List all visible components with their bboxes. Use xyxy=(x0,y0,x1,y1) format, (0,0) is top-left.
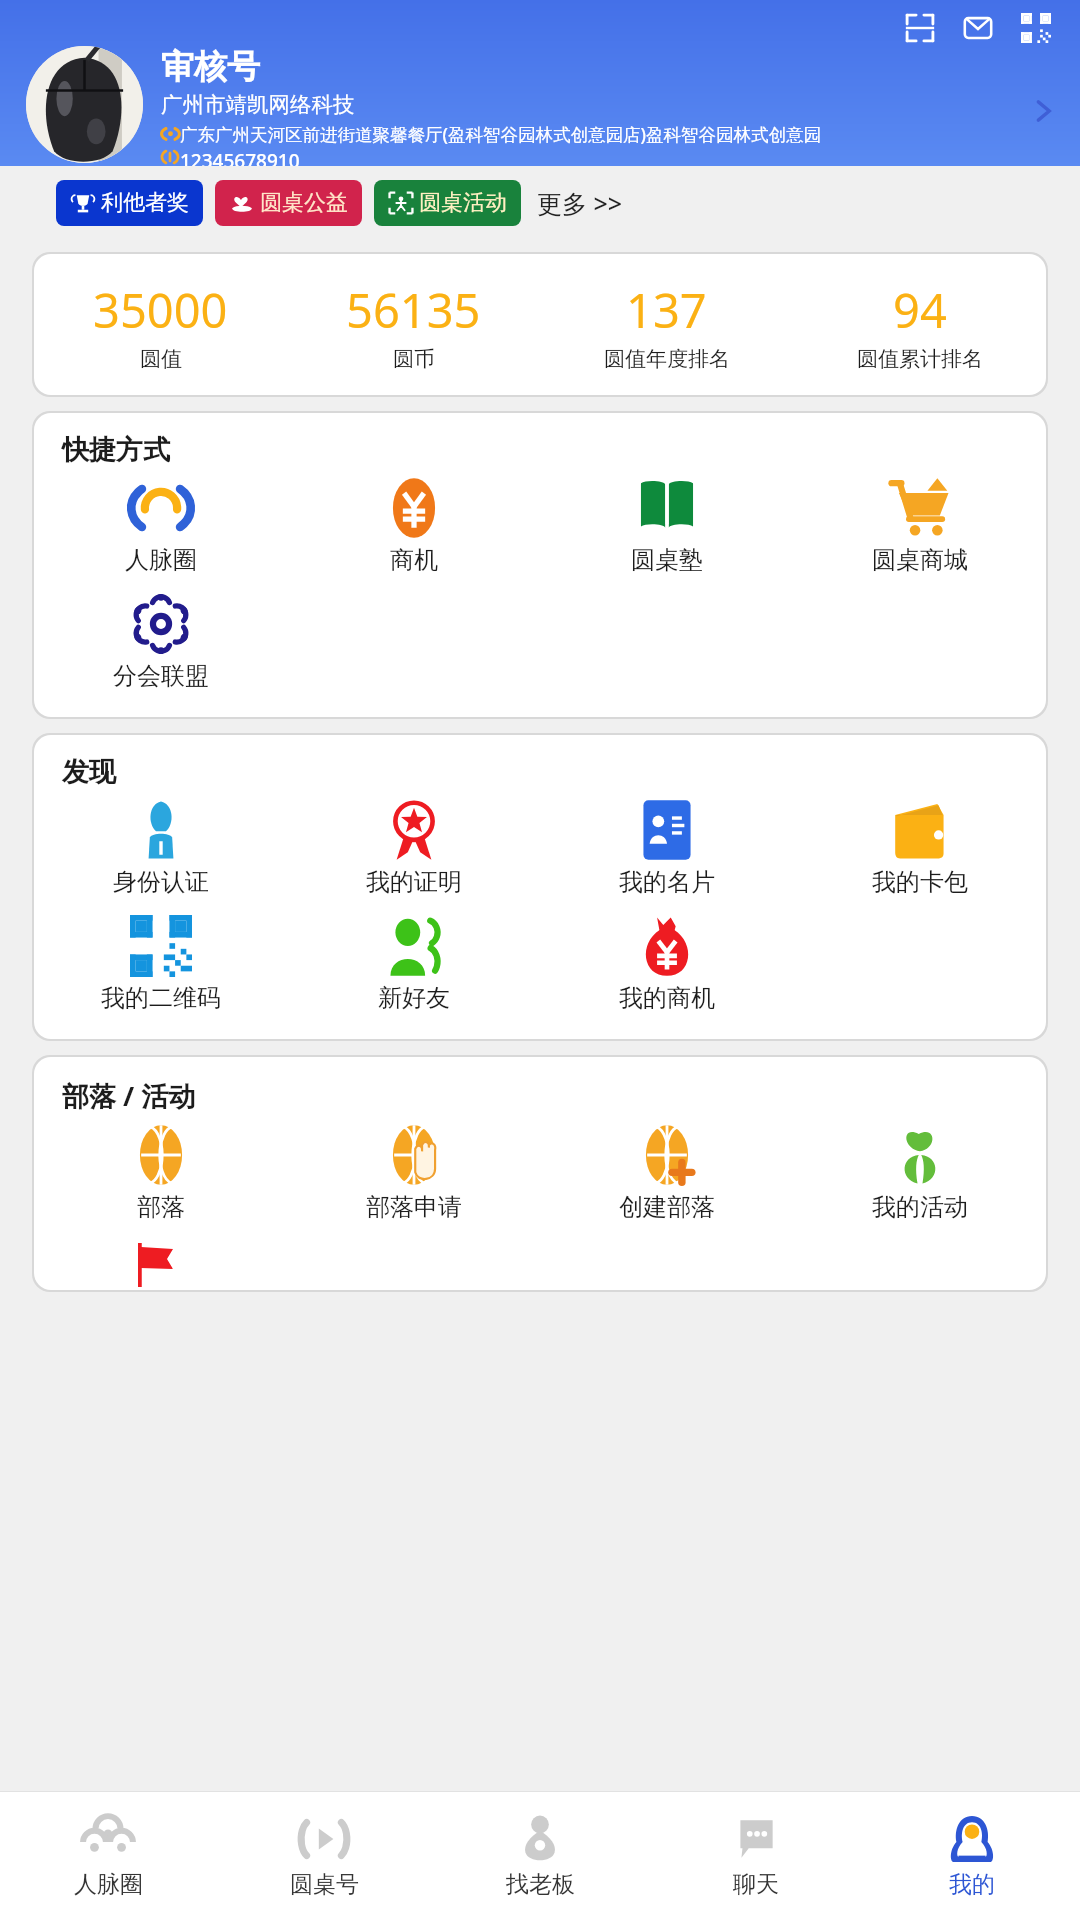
staticText: 56135 xyxy=(346,278,481,342)
staticText: 35000 xyxy=(93,278,228,342)
button[interactable]: 我的证明 xyxy=(287,789,540,897)
button[interactable]: 圆桌活动 xyxy=(374,180,521,226)
staticText: 圆值 xyxy=(140,346,182,372)
button[interactable]: 我的 xyxy=(864,1792,1080,1920)
button[interactable]: 创建部落 xyxy=(540,1114,793,1222)
staticText: 更多 >> xyxy=(537,186,623,220)
staticText: 广州市靖凯网络科技 xyxy=(161,91,355,118)
button[interactable]: 94 xyxy=(793,278,1046,372)
button[interactable]: 圆桌公益 xyxy=(215,180,362,226)
button[interactable]: 圆桌商城 xyxy=(793,467,1046,575)
staticText: 部落申请 xyxy=(366,1192,462,1222)
button[interactable]: 新好友 xyxy=(287,905,540,1013)
button[interactable]: 我的商机 xyxy=(540,905,793,1013)
button[interactable]: 利他者奖 xyxy=(56,180,203,226)
staticText: 137 xyxy=(626,278,707,342)
staticText: 找老板 xyxy=(506,1870,575,1899)
button[interactable]: 部落 xyxy=(34,1114,287,1222)
button[interactable]: 找老板 xyxy=(432,1792,648,1920)
button[interactable] xyxy=(34,1230,287,1290)
button[interactable]: 35000 xyxy=(34,278,287,372)
button[interactable]: 分会联盟 xyxy=(34,583,287,691)
button[interactable]: Messages xyxy=(958,8,998,48)
button[interactable]: 聊天 xyxy=(648,1792,864,1920)
staticText: 利他者奖 xyxy=(101,189,189,217)
staticText: 我的 xyxy=(949,1870,995,1899)
staticText: 我的二维码 xyxy=(101,983,221,1013)
button[interactable]: 部落申请 xyxy=(287,1114,540,1222)
button[interactable]: 商机 xyxy=(287,467,540,575)
button[interactable]: 更多 >> xyxy=(533,186,633,220)
button[interactable]: Scan xyxy=(900,8,940,48)
button[interactable]: 我的二维码 xyxy=(34,905,287,1013)
staticText: 圆桌号 xyxy=(290,1870,359,1899)
staticText: 圆桌商城 xyxy=(872,545,968,575)
staticText: 94 xyxy=(893,278,947,342)
staticText: 身份认证 xyxy=(113,867,209,897)
staticText: 新好友 xyxy=(378,983,450,1013)
staticText: 快捷方式 xyxy=(62,433,170,467)
staticText: 人脉圈 xyxy=(125,545,197,575)
staticText: 广东广州天河区前进街道聚馨餐厅(盈科智谷园林式创意园店)盈科智谷园林式创意园 xyxy=(180,122,821,146)
staticText: 我的活动 xyxy=(872,1192,968,1222)
staticText: 发现 xyxy=(62,755,116,789)
staticText: 我的名片 xyxy=(619,867,715,897)
staticText: 我的商机 xyxy=(619,983,715,1013)
staticText: 圆桌公益 xyxy=(260,189,348,217)
button[interactable]: 137 xyxy=(540,278,793,372)
button[interactable]: 人脉圈 xyxy=(34,467,287,575)
button[interactable]: 身份认证 xyxy=(34,789,287,897)
button[interactable]: 圆桌塾 xyxy=(540,467,793,575)
button[interactable]: 我的卡包 xyxy=(793,789,1046,897)
button[interactable]: 我的名片 xyxy=(540,789,793,897)
staticText: 聊天 xyxy=(733,1870,779,1899)
staticText: 我的证明 xyxy=(366,867,462,897)
staticText: 我的卡包 xyxy=(872,867,968,897)
button[interactable]: 圆桌号 xyxy=(216,1792,432,1920)
staticText: 创建部落 xyxy=(619,1192,715,1222)
staticText: 人脉圈 xyxy=(74,1870,143,1899)
button[interactable]: 人脉圈 xyxy=(0,1792,216,1920)
staticText: 审核号 xyxy=(161,46,260,88)
staticText: 圆值累计排名 xyxy=(857,346,983,372)
staticText: 圆桌活动 xyxy=(419,189,507,217)
button[interactable]: QR code xyxy=(1016,8,1056,48)
staticText: 商机 xyxy=(390,545,438,575)
button[interactable]: 56135 xyxy=(287,278,540,372)
button[interactable]: Profile details xyxy=(1020,88,1066,134)
staticText: 部落 xyxy=(137,1192,185,1222)
button[interactable]: 我的活动 xyxy=(793,1114,1046,1222)
staticText: 圆值年度排名 xyxy=(604,346,730,372)
staticText: 圆桌塾 xyxy=(631,545,703,575)
staticText: 分会联盟 xyxy=(113,661,209,691)
staticText: 12345678910 xyxy=(180,148,300,166)
staticText: 部落 / 活动 xyxy=(62,1077,196,1114)
staticText: 圆币 xyxy=(393,346,435,372)
